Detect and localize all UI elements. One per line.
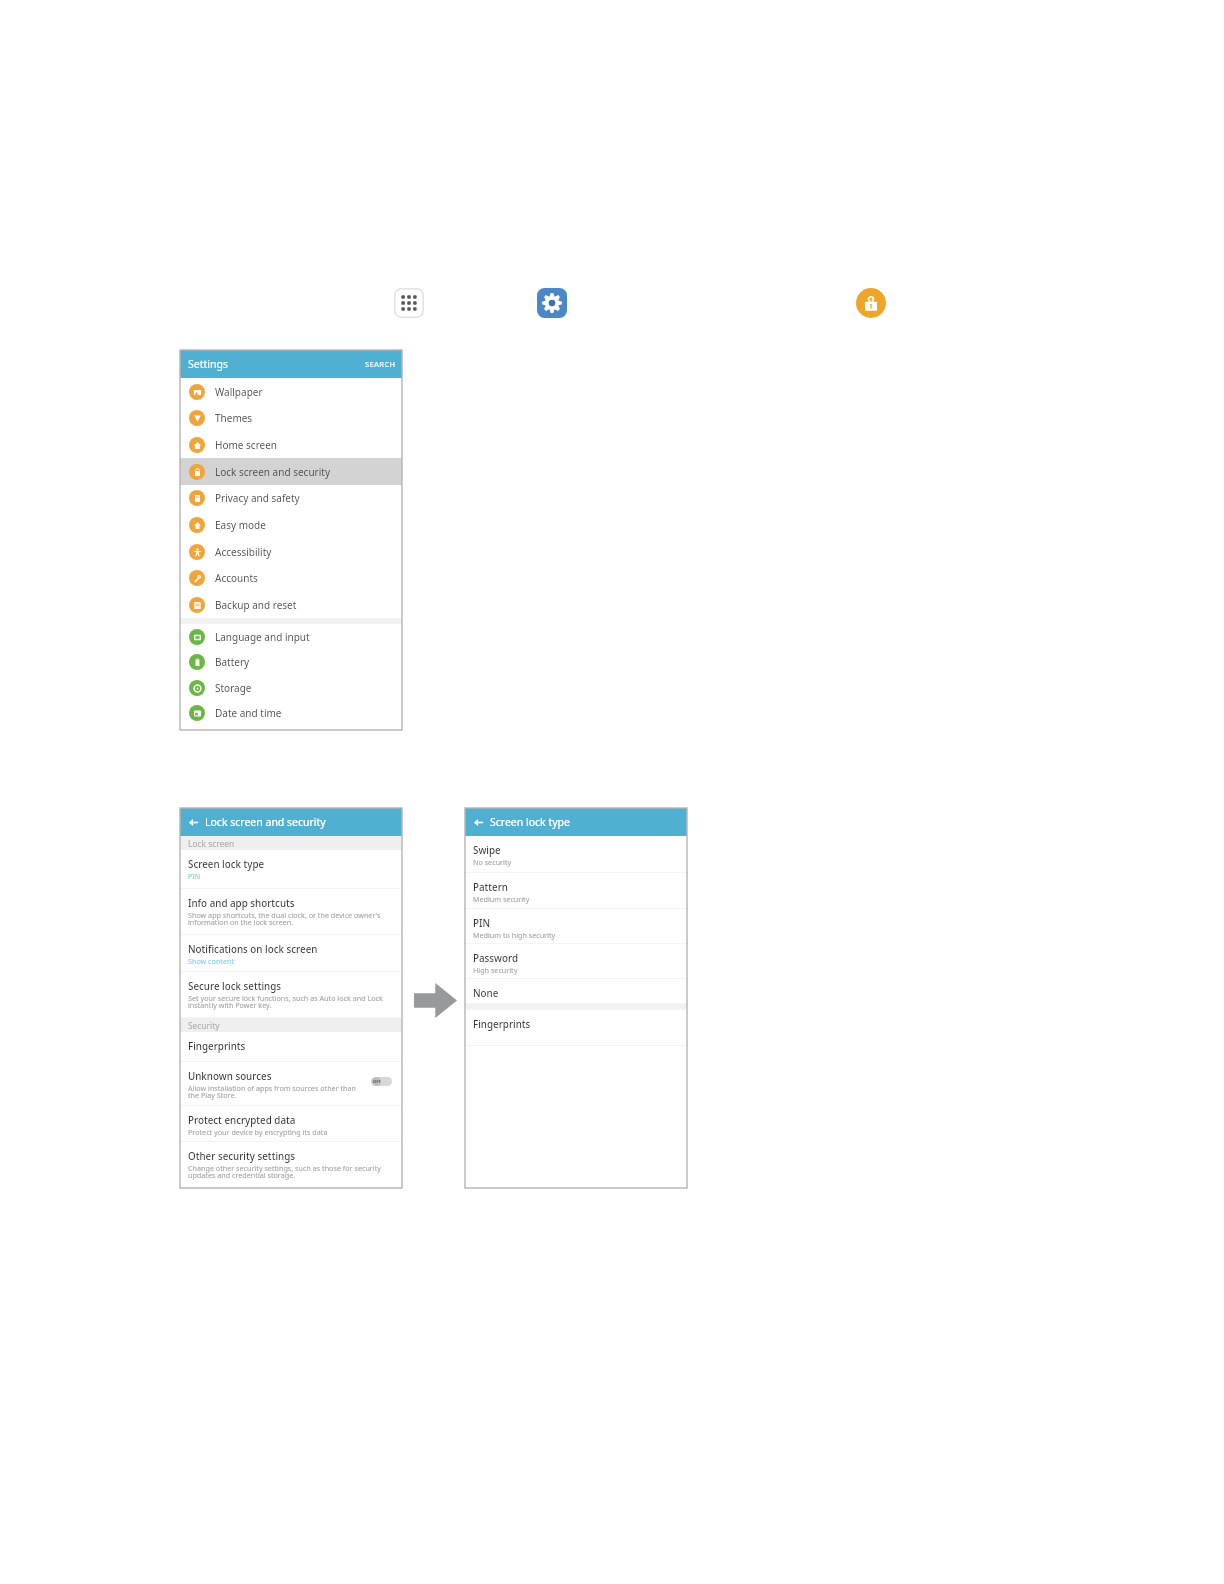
button[interactable]: Fingerprints (180, 1032, 402, 1062)
staticText: Storage (215, 681, 252, 695)
staticText: Lock screen (188, 838, 235, 849)
button[interactable]: Secure lock settings (180, 972, 402, 1018)
button[interactable]: Backup and reset (180, 591, 402, 618)
staticText: SEARCH (365, 359, 396, 369)
staticText: No security (473, 857, 512, 867)
button[interactable]: Apps (394, 288, 424, 318)
button[interactable]: Info and app shortcuts (180, 889, 402, 935)
staticText: Backup and reset (215, 598, 297, 612)
staticText: High security (473, 965, 518, 975)
button[interactable]: Fingerprints (465, 1010, 687, 1046)
button[interactable]: PIN (465, 909, 687, 944)
button[interactable]: Other security settings (180, 1142, 402, 1188)
button[interactable]: Themes (180, 405, 402, 431)
button[interactable]: Lock (856, 288, 886, 318)
staticText: Language and input (215, 630, 310, 644)
staticText: Medium security (473, 894, 530, 904)
staticText: Accessibility (215, 545, 272, 559)
staticText: OFF (373, 1079, 381, 1085)
staticText: Protect encrypted data (188, 1114, 296, 1127)
staticText: Info and app shortcuts (188, 897, 295, 910)
staticText: Lock screen and security (215, 465, 330, 479)
button[interactable]: Screen lock type (180, 850, 402, 889)
staticText: Unknown sources (188, 1070, 272, 1083)
button[interactable]: Pattern (465, 873, 687, 909)
staticText: Protect your device by encrypting its da… (188, 1127, 328, 1137)
staticText: Wallpaper (215, 385, 263, 399)
staticText: Date and time (215, 706, 282, 720)
button[interactable]: Accessibility (180, 538, 402, 565)
staticText: Pattern (473, 881, 508, 894)
button[interactable]: Accounts (180, 565, 402, 591)
staticText: Secure lock settings (188, 980, 282, 993)
staticText: Screen lock type (188, 858, 265, 871)
button[interactable]: Back (186, 815, 200, 829)
staticText: Show app shortcuts, the dual clock, or t… (188, 910, 381, 928)
staticText: Accounts (215, 571, 258, 585)
button[interactable]: Date and time (180, 700, 402, 726)
staticText: Home screen (215, 438, 278, 452)
button[interactable]: Password (465, 944, 687, 979)
staticText: Change other security settings, such as … (188, 1163, 381, 1181)
button[interactable]: Language and input (180, 624, 402, 649)
staticText: Set your secure lock functions, such as … (188, 993, 383, 1011)
staticText: Notifications on lock screen (188, 943, 318, 956)
staticText: Allow installation of apps from sources … (188, 1083, 357, 1101)
button[interactable]: Lock screen and security (180, 458, 402, 485)
staticText: PIN (473, 917, 491, 930)
staticText: Lock screen and security (205, 815, 326, 829)
button[interactable]: Battery (180, 649, 402, 675)
staticText: Privacy and safety (215, 491, 300, 505)
button[interactable]: Home screen (180, 431, 402, 458)
staticText: Fingerprints (473, 1018, 531, 1031)
staticText: Fingerprints (188, 1040, 246, 1053)
staticText: Swipe (473, 844, 501, 857)
staticText: Security (188, 1020, 220, 1031)
button[interactable]: Protect encrypted data (180, 1106, 402, 1142)
button[interactable]: Storage (180, 675, 402, 700)
staticText: Battery (215, 655, 250, 669)
staticText: Medium to high security (473, 930, 556, 940)
staticText: Password (473, 952, 519, 965)
staticText: Settings (188, 357, 228, 371)
staticText: None (473, 987, 499, 1000)
button[interactable]: Notifications on lock screen (180, 935, 402, 972)
staticText: PIN (188, 871, 201, 881)
button[interactable]: Easy mode (180, 511, 402, 538)
button[interactable]: Unknown sources (180, 1062, 402, 1106)
button[interactable]: Settings (537, 288, 567, 318)
button[interactable]: Wallpaper (180, 378, 402, 405)
button[interactable]: Unknown sources toggle, off (371, 1077, 392, 1086)
staticText: Screen lock type (490, 815, 570, 829)
staticText: Themes (215, 411, 253, 425)
staticText: Other security settings (188, 1150, 296, 1163)
staticText: Easy mode (215, 518, 266, 532)
staticText: Show content (188, 956, 235, 966)
button[interactable]: Privacy and safety (180, 485, 402, 511)
button[interactable]: None (465, 979, 687, 1004)
button[interactable]: Back (471, 815, 485, 829)
button[interactable]: Swipe (465, 836, 687, 873)
